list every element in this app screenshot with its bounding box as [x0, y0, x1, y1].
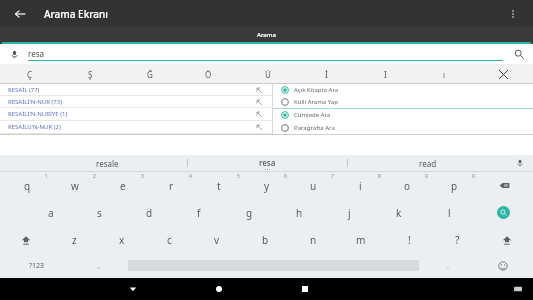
- button[interactable]: v: [193, 226, 241, 253]
- button[interactable]: t: [195, 172, 243, 199]
- staticText: ?123: [29, 261, 45, 271]
- button[interactable]: u: [290, 172, 337, 199]
- button[interactable]: Keyboard: [507, 278, 529, 300]
- button[interactable]: Külli Arama Yap: [273, 96, 533, 108]
- staticText: s: [97, 206, 102, 220]
- button[interactable]: Back: [10, 4, 30, 24]
- button[interactable]: Backspace: [478, 172, 530, 199]
- button[interactable]: resale: [28, 155, 187, 171]
- staticText: I: [384, 69, 387, 80]
- button[interactable]: RESAİLÜ'N-NUR (2): [0, 121, 272, 133]
- button[interactable]: !: [385, 226, 433, 253]
- button[interactable]: Home: [199, 278, 239, 300]
- button[interactable]: Emoji: [473, 253, 533, 278]
- staticText: m: [356, 233, 366, 247]
- button[interactable]: Search: [511, 46, 527, 62]
- button[interactable]: Cümlede Ara: [273, 109, 533, 121]
- staticText: n: [310, 233, 317, 247]
- button[interactable]: f: [174, 199, 224, 226]
- staticText: t: [217, 179, 221, 193]
- staticText: Ç: [27, 69, 33, 80]
- staticText: q: [24, 179, 31, 193]
- button[interactable]: Search: [474, 199, 533, 226]
- button[interactable]: i: [337, 172, 384, 199]
- button[interactable]: l: [424, 199, 474, 226]
- button[interactable]: Ü: [238, 64, 297, 84]
- button[interactable]: resa: [188, 155, 347, 171]
- button[interactable]: o: [384, 172, 431, 199]
- button[interactable]: Ğ: [120, 64, 179, 84]
- button[interactable]: y: [243, 172, 290, 199]
- button[interactable]: RESAİLİ'N-NUR (73): [0, 96, 272, 107]
- staticText: i: [359, 179, 362, 193]
- button[interactable]: z: [51, 226, 98, 253]
- button[interactable]: n: [289, 226, 337, 253]
- button[interactable]: ı: [415, 64, 474, 84]
- button[interactable]: RESAİL (77): [0, 84, 272, 95]
- button[interactable]: Shift: [0, 226, 51, 253]
- button[interactable]: g: [224, 199, 274, 226]
- staticText: 7: [331, 173, 334, 180]
- button[interactable]: j: [324, 199, 374, 226]
- staticText: ı: [443, 69, 446, 80]
- staticText: resa: [28, 48, 44, 59]
- staticText: p: [451, 179, 458, 193]
- staticText: v: [214, 233, 220, 247]
- button[interactable]: More options: [503, 4, 523, 24]
- button[interactable]: Shift: [481, 226, 533, 253]
- button[interactable]: ?: [433, 226, 481, 253]
- staticText: Arama: [257, 31, 276, 39]
- button[interactable]: q: [3, 172, 51, 199]
- button[interactable]: b: [241, 226, 289, 253]
- button[interactable]: Ö: [179, 64, 238, 84]
- staticText: İ: [325, 69, 328, 80]
- staticText: .: [447, 261, 449, 271]
- button[interactable]: p: [431, 172, 478, 199]
- staticText: Ş: [88, 69, 93, 80]
- staticText: b: [262, 233, 269, 247]
- staticText: read: [419, 158, 437, 169]
- staticText: 8: [378, 173, 381, 180]
- button[interactable]: x: [98, 226, 145, 253]
- staticText: 1: [45, 173, 48, 180]
- button[interactable]: read: [348, 155, 507, 171]
- button[interactable]: w: [51, 172, 99, 199]
- button[interactable]: c: [145, 226, 193, 253]
- staticText: 2: [93, 173, 96, 180]
- button[interactable]: I: [356, 64, 415, 84]
- button[interactable]: İ: [297, 64, 356, 84]
- button[interactable]: m: [337, 226, 385, 253]
- button[interactable]: d: [124, 199, 174, 226]
- button[interactable]: k: [374, 199, 424, 226]
- button[interactable]: e: [99, 172, 147, 199]
- button[interactable]: Voice input: [507, 155, 533, 171]
- button[interactable]: ?123: [0, 253, 74, 278]
- button[interactable]: s: [75, 199, 124, 226]
- staticText: x: [119, 233, 125, 247]
- staticText: Cümlede Ara: [294, 111, 331, 119]
- button[interactable]: Paragrafta Ara: [273, 121, 533, 134]
- staticText: z: [72, 233, 77, 247]
- staticText: 0: [472, 173, 475, 180]
- staticText: 9: [425, 173, 428, 180]
- staticText: RESAİLÜ'N-NUR (2): [8, 123, 61, 131]
- staticText: k: [396, 206, 402, 220]
- button[interactable]: Back: [113, 278, 153, 300]
- button[interactable]: Ç: [0, 64, 60, 84]
- button[interactable]: r: [147, 172, 195, 199]
- button[interactable]: Voice search: [6, 46, 22, 62]
- button[interactable]: Close: [474, 64, 533, 84]
- button[interactable]: Recent apps: [285, 278, 325, 300]
- staticText: l: [448, 206, 451, 220]
- button[interactable]: RESAİLİ'N-NURİYE (1): [0, 108, 272, 120]
- staticText: !: [408, 233, 411, 247]
- button[interactable]: Ş: [60, 64, 120, 84]
- button[interactable]: Arama: [0, 27, 533, 44]
- button[interactable]: Açık Kitapta Ara: [273, 84, 533, 96]
- staticText: Ü: [265, 69, 271, 80]
- button[interactable]: h: [274, 199, 324, 226]
- button[interactable]: a: [26, 199, 75, 226]
